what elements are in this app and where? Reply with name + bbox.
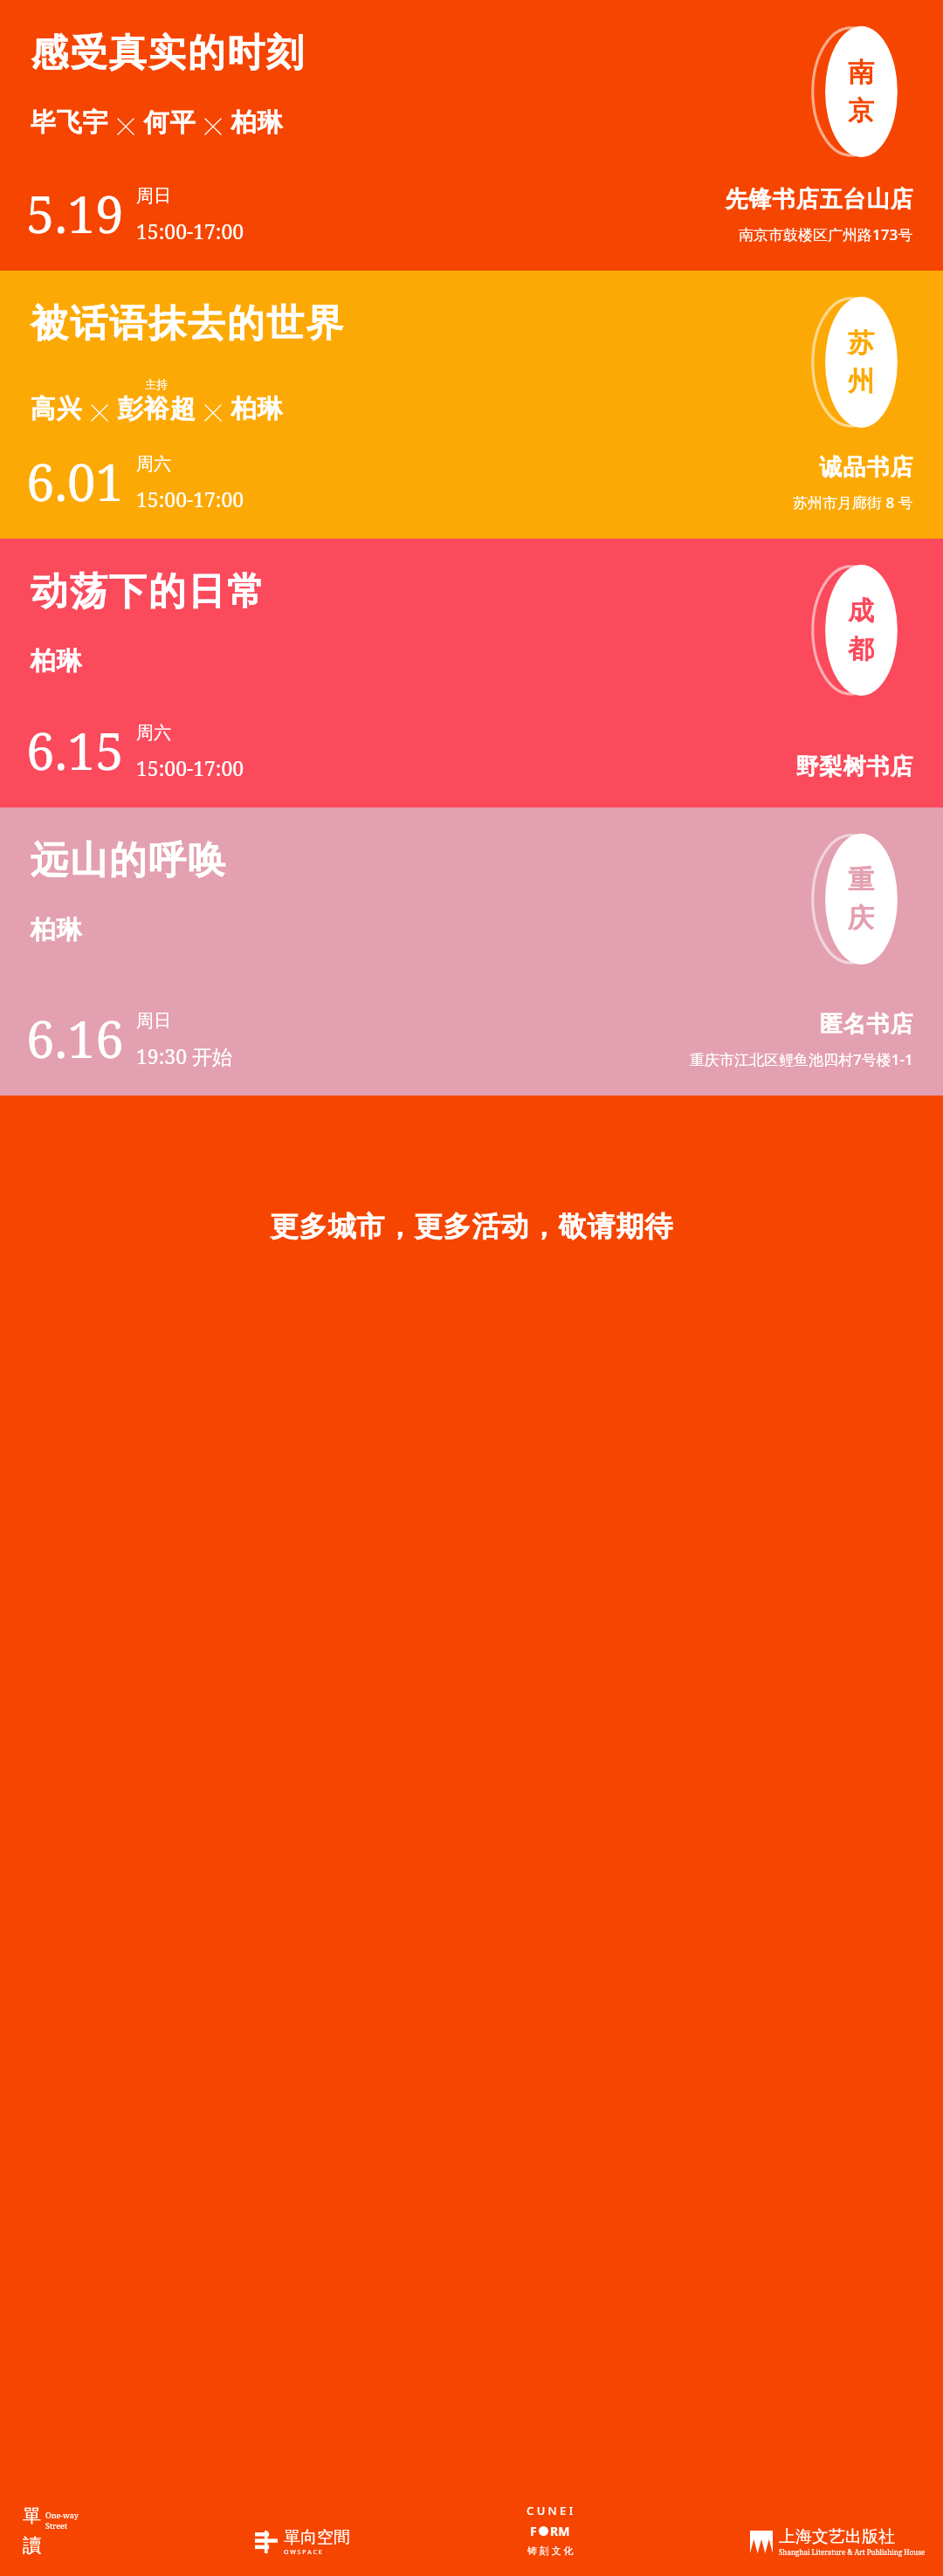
staticText: O W S P A C E [284, 2548, 322, 2557]
staticText: 野梨树书店 [795, 752, 913, 781]
staticText: 彭裕超 [117, 393, 196, 425]
staticText: 铸 刻 文 化 [527, 2544, 574, 2557]
staticText: 6.01 [26, 447, 124, 516]
staticText: 动荡下的日常 [30, 568, 265, 615]
staticText: 周日 [136, 185, 171, 207]
staticText: 诚品书店 [819, 453, 913, 482]
staticText: 周日 [136, 1010, 171, 1032]
staticText: 南 [848, 56, 874, 89]
staticText: 單向空間 [284, 2527, 350, 2548]
staticText: 成 [848, 594, 874, 628]
staticText: 京 [848, 94, 874, 127]
staticText: 匿名书店 [819, 1010, 913, 1039]
staticText: 讀 [23, 2534, 41, 2557]
button[interactable]: 感受真实的时刻 [0, 0, 943, 271]
staticText: 單 [23, 2504, 41, 2527]
button[interactable]: City 南京 [821, 26, 901, 157]
staticText: 上海文艺出版社 [779, 2526, 895, 2547]
staticText: 6.15 [26, 716, 124, 785]
staticText: Street [45, 2520, 68, 2531]
staticText: 重 [848, 863, 874, 896]
staticText: One-way [45, 2510, 79, 2520]
staticText: 5.19 [26, 179, 124, 248]
staticText: 柏琳 [231, 106, 283, 139]
staticText: 柏琳 [30, 914, 82, 946]
staticText: 6.16 [26, 1004, 124, 1073]
button[interactable]: City 成都 [821, 565, 901, 696]
staticText: 感受真实的时刻 [30, 30, 305, 77]
button[interactable]: One-way Street [23, 2504, 79, 2557]
staticText: 被话语抹去的世界 [30, 300, 344, 347]
staticText: 15:00-17:00 [136, 217, 244, 244]
staticText: 周六 [136, 722, 171, 744]
staticText: 毕飞宇 [30, 106, 108, 139]
staticText: 何平 [143, 106, 196, 139]
staticText: 重庆市江北区鲤鱼池四村7号楼1-1 [690, 1049, 913, 1069]
button[interactable]: City 苏州 [821, 297, 901, 428]
staticText: 柏琳 [231, 393, 283, 425]
button[interactable]: 远山的呼唤 [0, 807, 943, 1096]
staticText: 苏州市月廊街 8 号 [793, 492, 913, 512]
button[interactable]: 动荡下的日常 [0, 539, 943, 807]
staticText: 远山的呼唤 [30, 837, 226, 884]
staticText: 南京市鼓楼区广州路173号 [739, 224, 913, 244]
staticText: 19:30 开始 [136, 1042, 232, 1069]
staticText: 苏 [848, 326, 874, 360]
staticText: 更多城市，更多活动，敬请期待 [270, 1209, 673, 1244]
staticText: RM [550, 2523, 570, 2539]
staticText: 15:00-17:00 [136, 754, 244, 781]
staticText: 州 [848, 365, 874, 398]
staticText: 都 [848, 633, 874, 666]
staticText: Shanghai Literature & Art Publishing Hou… [779, 2547, 926, 2557]
staticText: F [530, 2523, 537, 2539]
staticText: 先锋书店五台山店 [725, 185, 913, 214]
staticText: 周六 [136, 453, 171, 475]
button[interactable]: OWSPACE [255, 2527, 350, 2557]
staticText: 主持 [145, 377, 168, 391]
staticText: 高兴 [30, 393, 82, 425]
button[interactable]: City 重庆 [821, 834, 901, 965]
staticText: 庆 [848, 902, 874, 935]
button[interactable]: Shanghai Literature and Art Publishing H… [750, 2526, 926, 2557]
staticText: C U N E I [527, 2503, 574, 2518]
staticText: 15:00-17:00 [136, 485, 244, 512]
button[interactable]: CUNEI FORM [527, 2503, 574, 2557]
staticText: 柏琳 [30, 645, 82, 677]
button[interactable]: 被话语抹去的世界 [0, 271, 943, 539]
